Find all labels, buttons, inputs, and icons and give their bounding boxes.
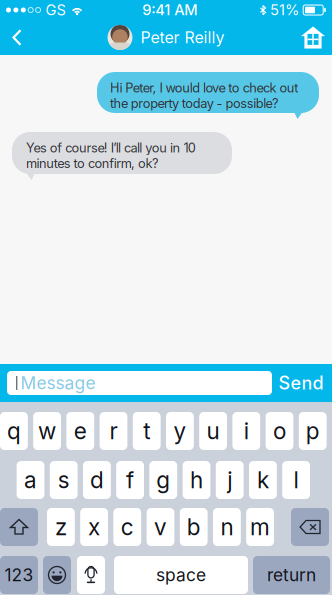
staticText: w — [38, 417, 56, 445]
button[interactable]: y — [166, 412, 194, 450]
button[interactable]: j — [216, 461, 244, 499]
staticText: return — [267, 564, 316, 585]
staticText: l — [294, 466, 299, 494]
button[interactable]: f — [116, 461, 144, 499]
button[interactable]: l — [282, 461, 310, 499]
button[interactable]: x — [80, 508, 108, 546]
staticText: a — [24, 466, 37, 494]
button[interactable]: r — [100, 412, 127, 450]
button[interactable]: Send — [272, 364, 330, 402]
button[interactable]: u — [199, 412, 227, 450]
staticText: o — [273, 417, 286, 445]
staticText: Peter Reilly — [140, 28, 224, 47]
button[interactable]: Property details — [294, 20, 332, 55]
button[interactable]: q — [0, 412, 28, 450]
staticText: space — [156, 564, 206, 585]
staticText: y — [173, 417, 186, 445]
button[interactable]: z — [47, 508, 75, 546]
button[interactable]: 123 — [0, 556, 38, 594]
button[interactable]: k — [249, 461, 277, 499]
staticText: Yes of course! I’ll call you in 10 minut… — [26, 140, 196, 171]
button[interactable]: return — [253, 556, 330, 594]
staticText: u — [207, 417, 220, 445]
staticText: Hi Peter, I would love to check out the … — [110, 80, 298, 111]
staticText: t — [143, 417, 150, 445]
button[interactable]: space — [114, 556, 248, 594]
staticText: 51% — [270, 1, 299, 19]
button[interactable]: o — [266, 412, 293, 450]
button[interactable]: Emoji — [43, 556, 71, 594]
button[interactable]: b — [180, 508, 208, 546]
staticText: n — [220, 513, 233, 541]
staticText: i — [244, 417, 249, 445]
button[interactable]: Back — [0, 20, 34, 55]
staticText: c — [121, 513, 134, 541]
staticText: j — [227, 466, 232, 494]
staticText: e — [74, 417, 87, 445]
staticText: Send — [278, 372, 323, 394]
button[interactable]: v — [147, 508, 174, 546]
button[interactable]: c — [113, 508, 141, 546]
button[interactable]: Delete — [291, 508, 329, 546]
button[interactable]: e — [66, 412, 94, 450]
staticText: GS — [46, 1, 66, 19]
button[interactable]: w — [33, 412, 61, 450]
staticText: q — [7, 417, 21, 445]
staticText: d — [90, 466, 104, 494]
button[interactable]: n — [213, 508, 241, 546]
staticText: m — [250, 513, 270, 541]
button[interactable]: p — [299, 412, 327, 450]
button[interactable]: m — [246, 508, 274, 546]
staticText: 123 — [4, 564, 33, 585]
staticText: Message — [20, 372, 95, 393]
button[interactable]: Dictation — [77, 556, 105, 594]
staticText: s — [58, 466, 70, 494]
staticText: r — [109, 417, 117, 445]
button[interactable]: Shift — [0, 508, 38, 546]
staticText: x — [88, 513, 100, 541]
button[interactable]: d — [83, 461, 111, 499]
button[interactable]: s — [50, 461, 78, 499]
button[interactable]: t — [133, 412, 161, 450]
button[interactable]: i — [232, 412, 260, 450]
staticText: h — [190, 466, 203, 494]
button[interactable]: h — [183, 461, 210, 499]
staticText: z — [55, 513, 67, 541]
staticText: p — [306, 417, 320, 445]
staticText: v — [154, 513, 167, 541]
staticText: b — [187, 513, 201, 541]
staticText: 9:41 AM — [142, 1, 197, 19]
staticText: f — [126, 466, 134, 494]
button[interactable]: g — [149, 461, 177, 499]
button[interactable]: a — [17, 461, 44, 499]
staticText: g — [156, 466, 170, 494]
staticText: k — [257, 466, 269, 494]
